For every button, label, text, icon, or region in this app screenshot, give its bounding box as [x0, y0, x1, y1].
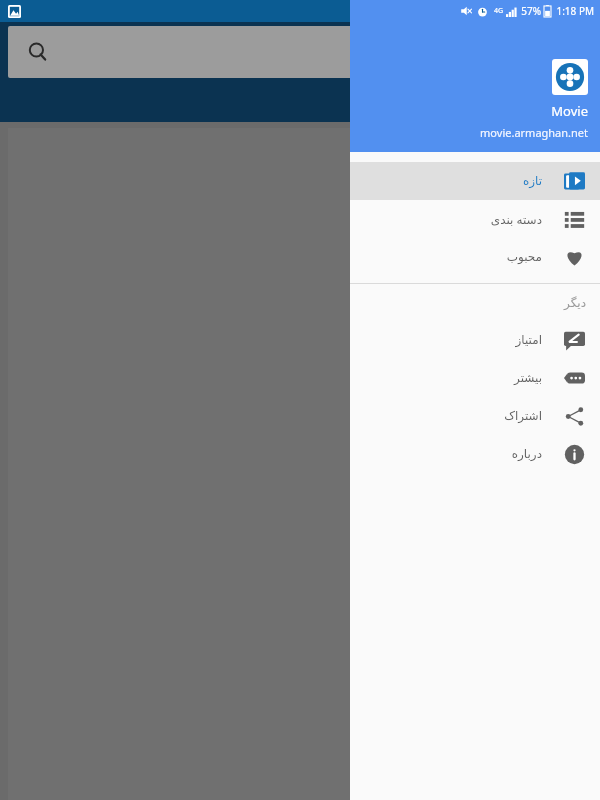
staticText: دیگر: [564, 296, 586, 310]
staticText: movie.armaghan.net: [480, 125, 588, 140]
other: New: [564, 171, 585, 192]
button[interactable]: Search: [8, 26, 592, 78]
staticText: تازه: [522, 174, 542, 188]
button[interactable]: درباره: [350, 435, 600, 473]
button[interactable]: تازه: [350, 162, 600, 200]
button[interactable]: امتیاز: [350, 321, 600, 359]
staticText: درباره: [511, 447, 542, 461]
other: More: [564, 368, 585, 389]
button[interactable]: بیشتر: [350, 359, 600, 397]
other: Rate: [564, 330, 585, 351]
staticText: اشتراک: [504, 409, 542, 423]
button[interactable]: Movie: [350, 0, 600, 152]
staticText: محبوب: [506, 250, 542, 264]
other: Favorites: [564, 247, 585, 268]
other: About: [564, 444, 585, 465]
staticText: 4G: [493, 6, 503, 16]
staticText: بیشتر: [514, 371, 542, 385]
button[interactable]: دسته بندی: [350, 200, 600, 238]
other: Share: [564, 406, 585, 427]
other: Categories: [564, 209, 585, 230]
staticText: Movie: [551, 102, 588, 120]
other: Search: [28, 42, 48, 62]
staticText: تازه: [545, 97, 563, 110]
button[interactable]: محبوب: [350, 238, 600, 276]
staticText: 57%: [521, 4, 541, 18]
staticText: 1:18 PM: [556, 4, 594, 18]
staticText: امتیاز: [515, 333, 542, 347]
button[interactable]: اشتراک: [350, 397, 600, 435]
staticText: دسته بندی: [490, 211, 542, 227]
button[interactable]: تازه: [520, 89, 588, 120]
